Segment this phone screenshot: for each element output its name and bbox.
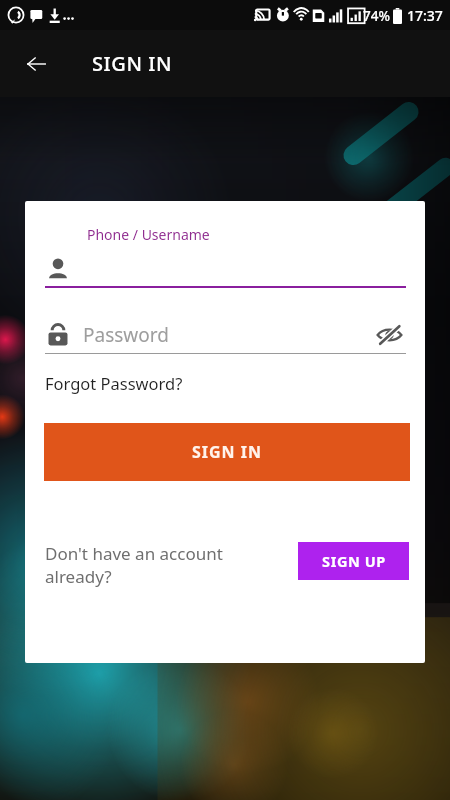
staticText: Phone / Username — [87, 225, 210, 244]
staticText: Don't have an account already? — [45, 542, 284, 588]
button[interactable]: Forgot Password? — [45, 370, 183, 396]
button[interactable]: SIGN IN — [44, 423, 410, 481]
button[interactable]: Back — [12, 40, 60, 88]
staticText: 74% — [363, 7, 390, 25]
button[interactable]: Password — [45, 317, 406, 353]
button[interactable]: Show password — [372, 318, 406, 352]
staticText: Forgot Password? — [45, 372, 183, 394]
staticText: 17:37 — [407, 6, 443, 25]
staticText: Password — [83, 322, 372, 348]
staticText: SIGN IN — [92, 50, 173, 77]
staticText: SIGN IN — [192, 441, 263, 463]
staticText: SIGN UP — [322, 551, 386, 571]
button[interactable]: SIGN UP — [298, 542, 409, 580]
button[interactable] — [45, 252, 406, 286]
